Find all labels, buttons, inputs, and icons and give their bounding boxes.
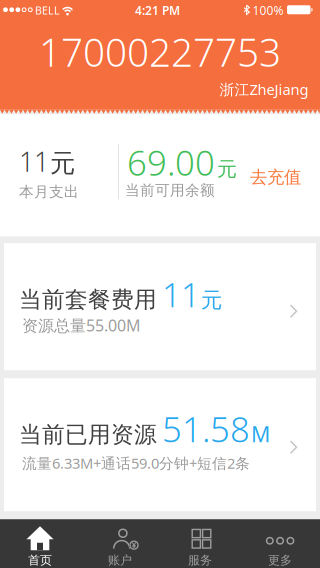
staticText: BELL (35, 3, 60, 17)
staticText: 当前可用余额 (125, 181, 215, 199)
button[interactable]: 更多 (240, 519, 320, 568)
staticText: 去充值 (250, 167, 301, 188)
staticText: 首页 (28, 553, 52, 568)
staticText: 69.00 (127, 139, 215, 185)
button[interactable]: 去充值 (250, 167, 301, 188)
staticText: 100% (252, 2, 283, 18)
staticText: 17000227753 (39, 26, 281, 77)
staticText: 4:21 PM (135, 2, 180, 18)
staticText: 服务 (188, 553, 212, 568)
staticText: 11 (162, 272, 200, 316)
button[interactable]: 当前套餐费用 (4, 243, 316, 370)
staticText: 浙江ZheJiang (219, 79, 308, 99)
button[interactable]: 账户 (80, 519, 160, 568)
staticText: 更多 (268, 553, 292, 568)
staticText: 元 (217, 157, 237, 181)
staticText: 本月支出 (19, 183, 79, 201)
staticText: 11 (19, 144, 49, 179)
staticText: 元 (201, 287, 222, 313)
staticText: 当前套餐费用 (19, 286, 157, 314)
staticText: 账户 (108, 553, 132, 568)
button[interactable]: 首页 (0, 519, 80, 568)
button[interactable]: 服务 (160, 519, 240, 568)
button[interactable]: 当前已用资源 (4, 378, 316, 511)
staticText: 元 (50, 148, 75, 179)
staticText: M (251, 420, 270, 448)
staticText: 51.58 (162, 406, 250, 452)
button[interactable]: 69.00 (127, 114, 257, 236)
staticText: 流量6.33M+通话59.0分钟+短信2条 (22, 453, 250, 473)
staticText: 当前已用资源 (19, 421, 157, 448)
button[interactable]: 11 (0, 114, 118, 236)
staticText: 资源总量55.00M (22, 315, 141, 336)
